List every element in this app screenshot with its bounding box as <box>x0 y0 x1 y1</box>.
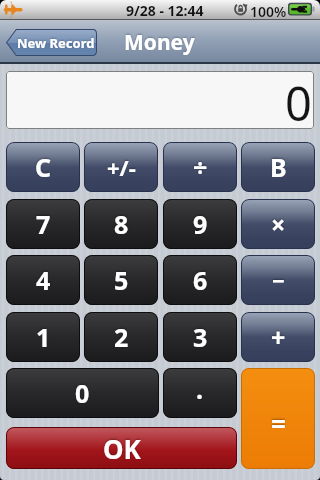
staticText: New Record <box>17 34 95 52</box>
staticText: 100% <box>250 2 287 21</box>
staticText: 0 <box>285 71 312 129</box>
button[interactable]: 6 <box>163 255 237 305</box>
staticText: 5 <box>114 263 129 297</box>
button[interactable]: 7 <box>6 199 80 249</box>
button[interactable]: + <box>241 312 315 362</box>
staticText: − <box>272 265 285 295</box>
staticText: + <box>271 320 286 354</box>
button[interactable]: OK <box>6 427 237 469</box>
staticText: 2 <box>114 320 129 354</box>
button[interactable]: 5 <box>84 255 158 305</box>
button[interactable]: 8 <box>84 199 158 249</box>
button[interactable]: C <box>6 142 80 192</box>
button[interactable]: 4 <box>6 255 80 305</box>
button[interactable]: × <box>241 199 315 249</box>
staticText: Money <box>124 28 195 57</box>
staticText: 0 <box>75 376 90 410</box>
button[interactable]: 0 <box>6 368 159 418</box>
staticText: = <box>271 406 286 441</box>
staticText: 4 <box>36 263 51 297</box>
button[interactable]: . <box>163 368 237 418</box>
button[interactable]: 9 <box>163 199 237 249</box>
staticText: OK <box>103 431 141 466</box>
staticText: +/- <box>107 152 136 182</box>
button[interactable]: 1 <box>6 312 80 362</box>
staticText: 9/28 - 12:44 <box>126 1 204 20</box>
button[interactable]: − <box>241 255 315 305</box>
staticText: . <box>196 372 204 406</box>
button[interactable]: 2 <box>84 312 158 362</box>
staticText: ÷ <box>193 150 208 184</box>
staticText: 6 <box>193 263 208 297</box>
staticText: × <box>271 207 286 241</box>
staticText: 9 <box>193 207 208 241</box>
button[interactable]: = <box>241 368 315 469</box>
button[interactable]: 3 <box>163 312 237 362</box>
button[interactable]: +/- <box>84 142 158 192</box>
staticText: 3 <box>193 320 208 354</box>
staticText: B <box>270 150 287 184</box>
staticText: 1 <box>36 320 51 354</box>
button[interactable]: ÷ <box>163 142 237 192</box>
button[interactable]: B <box>241 142 315 192</box>
staticText: 8 <box>114 207 129 241</box>
staticText: C <box>35 150 52 184</box>
button[interactable]: New Record <box>5 28 98 57</box>
staticText: 7 <box>36 207 51 241</box>
